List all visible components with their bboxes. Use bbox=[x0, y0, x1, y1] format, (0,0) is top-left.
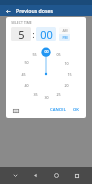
button[interactable]: 5 bbox=[11, 27, 31, 41]
staticText: CANCEL bbox=[50, 107, 66, 113]
staticText: : bbox=[32, 28, 35, 40]
button[interactable]: 40 bbox=[22, 81, 31, 90]
staticText: OK bbox=[73, 107, 79, 113]
button[interactable]: 50 bbox=[22, 58, 31, 67]
button[interactable]: 35 bbox=[31, 90, 40, 99]
button[interactable]: CANCEL bbox=[48, 106, 68, 114]
staticText: 5 bbox=[18, 27, 25, 41]
button[interactable]: 30 bbox=[42, 93, 51, 102]
staticText: 15 bbox=[67, 72, 72, 77]
button[interactable]: 00 bbox=[42, 47, 51, 56]
staticText: PM bbox=[62, 35, 68, 40]
button[interactable]: 45 bbox=[19, 70, 28, 79]
button[interactable]: 15 bbox=[65, 70, 74, 79]
button[interactable]: AM bbox=[59, 27, 70, 34]
staticText: 50 bbox=[24, 60, 29, 65]
button[interactable]: 10 bbox=[62, 59, 71, 68]
staticText: 00 bbox=[40, 27, 53, 41]
staticText: 45 bbox=[21, 72, 26, 77]
staticText: 10 bbox=[64, 61, 69, 66]
staticText: 35 bbox=[33, 92, 38, 97]
button[interactable]: 25 bbox=[54, 90, 63, 99]
button[interactable]: PM bbox=[59, 34, 70, 41]
staticText: 00 bbox=[44, 49, 49, 54]
button[interactable]: Back bbox=[4, 7, 12, 15]
staticText: 30 bbox=[44, 95, 49, 100]
staticText: Previous doses bbox=[16, 7, 53, 14]
staticText: AM bbox=[62, 28, 68, 33]
button[interactable]: 55 bbox=[30, 50, 39, 59]
button[interactable]: Recents bbox=[71, 170, 82, 181]
staticText: 25 bbox=[56, 92, 61, 97]
button[interactable]: 00 bbox=[36, 27, 56, 41]
button[interactable]: Home bbox=[51, 170, 62, 181]
button[interactable]: 05 bbox=[54, 50, 63, 59]
staticText: 40 bbox=[24, 83, 29, 88]
button[interactable]: OK bbox=[71, 106, 81, 114]
staticText: 55 bbox=[32, 52, 37, 57]
button[interactable]: Back bbox=[30, 170, 41, 181]
button[interactable]: Switch to text input bbox=[11, 106, 20, 115]
button[interactable]: Hide keyboard bbox=[10, 170, 21, 181]
button[interactable]: 20 bbox=[62, 81, 71, 90]
staticText: 20 bbox=[64, 83, 69, 88]
staticText: 05 bbox=[56, 52, 61, 57]
staticText: SELECT TIME bbox=[11, 20, 32, 25]
